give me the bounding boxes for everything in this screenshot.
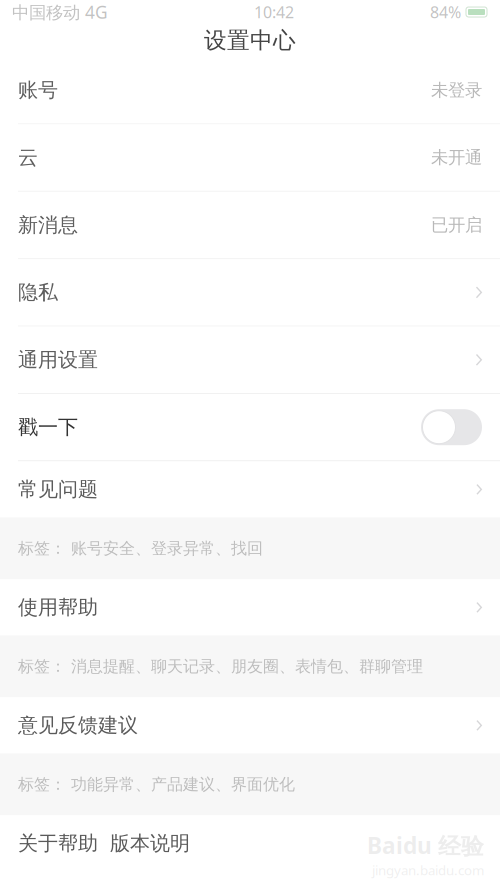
staticText: 使用帮助: [18, 595, 98, 620]
staticText: 隐私: [18, 280, 58, 305]
staticText: 意见反馈建议: [18, 713, 138, 738]
staticText: 10:42: [254, 1, 294, 23]
button[interactable]: 关于帮助 版本说明: [0, 815, 500, 871]
staticText: 未开通: [431, 147, 482, 168]
staticText: jingyan.baidu.com: [372, 861, 484, 879]
staticText: 标签： 功能异常、产品建议、界面优化: [18, 775, 295, 794]
staticText: 云: [18, 145, 38, 170]
button[interactable]: 账号: [0, 57, 500, 123]
button[interactable]: 隐私: [0, 259, 500, 326]
button[interactable]: 意见反馈建议: [0, 697, 500, 815]
button[interactable]: 常见问题: [0, 461, 500, 579]
staticText: 已开启: [431, 214, 482, 236]
button[interactable]: 戳一下: [0, 394, 500, 460]
button[interactable]: 通用设置: [0, 327, 500, 393]
button[interactable]: 新消息: [0, 192, 500, 258]
staticText: 标签： 账号安全、登录异常、找回: [18, 539, 263, 558]
staticText: 关于帮助 版本说明: [18, 831, 190, 856]
staticText: 账号: [18, 78, 58, 102]
staticText: 戳一下: [18, 415, 78, 439]
staticText: 中国移动 4G: [12, 0, 118, 23]
staticText: 未登录: [431, 80, 482, 101]
button[interactable]: 云: [0, 124, 500, 191]
staticText: 设置中心: [204, 27, 296, 54]
staticText: 新消息: [18, 213, 78, 237]
staticText: 通用设置: [18, 347, 98, 372]
button[interactable]: 使用帮助: [0, 579, 500, 697]
staticText: 标签： 消息提醒、聊天记录、朋友圈、表情包、群聊管理: [18, 657, 423, 676]
staticText: 84%: [430, 1, 461, 23]
staticText: Baidu 经验: [367, 830, 484, 860]
staticText: 常见问题: [18, 477, 98, 502]
